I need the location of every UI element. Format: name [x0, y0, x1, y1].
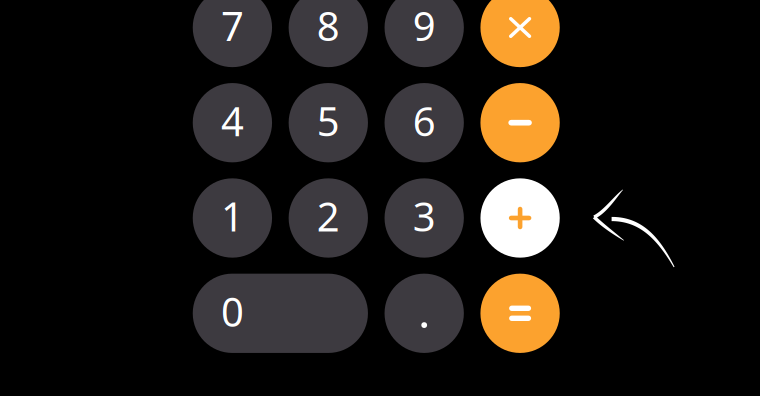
staticText: 7: [221, 0, 244, 52]
button[interactable]: 9: [385, 0, 464, 67]
button[interactable]: Plus: [480, 178, 560, 258]
staticText: 4: [221, 94, 244, 147]
button[interactable]: 8: [289, 0, 368, 67]
staticText: 0: [221, 285, 244, 338]
staticText: 6: [413, 94, 436, 147]
button[interactable]: Multiply: [480, 0, 560, 67]
button[interactable]: 6: [385, 83, 464, 162]
button[interactable]: 5: [289, 83, 368, 162]
staticText: 2: [317, 189, 340, 242]
button[interactable]: 7: [193, 0, 272, 67]
button[interactable]: Equals: [480, 274, 560, 353]
staticText: 5: [317, 94, 340, 147]
staticText: 3: [413, 189, 436, 242]
button[interactable]: 0: [193, 274, 368, 353]
button[interactable]: 2: [289, 178, 368, 258]
button[interactable]: 4: [193, 83, 272, 162]
staticText: 1: [221, 189, 244, 242]
staticText: 8: [317, 0, 340, 52]
button[interactable]: Decimal point: [385, 274, 464, 353]
button[interactable]: 3: [385, 178, 464, 258]
staticText: 9: [413, 0, 436, 52]
button[interactable]: 1: [193, 178, 272, 258]
button[interactable]: Minus: [480, 83, 560, 162]
